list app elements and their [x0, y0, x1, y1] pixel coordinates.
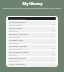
- button[interactable]: Atomic Habits: [8, 27, 56, 32]
- button[interactable]: Educated A Memoir: [8, 33, 56, 38]
- staticText: 4.5: [52, 41, 55, 43]
- button[interactable]: The Silent Patient: [8, 21, 56, 26]
- staticText: 4.5: [52, 53, 55, 55]
- staticText: Educated A Memoir: [9, 33, 28, 36]
- button[interactable]: The Midnight Library: [8, 51, 56, 56]
- staticText: Search your books: [10, 18, 26, 20]
- staticText: The Midnight Library: [9, 51, 29, 54]
- staticText: Dune Chronicles: [9, 63, 25, 66]
- staticText: Crawdads Sing: [9, 39, 24, 42]
- staticText: Sapiens Brief Hist: [9, 57, 26, 60]
- staticText: 4.5: [52, 47, 55, 49]
- staticText: Yuval Harari: [9, 60, 19, 62]
- button[interactable]: Search your books: [8, 17, 56, 20]
- staticText: 4.5: [52, 23, 55, 25]
- staticText: 4.5: [52, 59, 55, 61]
- staticText: Michelle Obama: [9, 48, 22, 50]
- staticText: 4.5: [52, 35, 55, 37]
- button[interactable]: Sapiens Brief Hist: [8, 57, 56, 62]
- staticText: 4.5: [52, 64, 55, 66]
- button[interactable]: Dune Chronicles: [8, 63, 56, 67]
- staticText: 4.5: [52, 29, 55, 31]
- staticText: My library: [22, 1, 43, 6]
- staticText: Tara Westover: [9, 36, 21, 38]
- button[interactable]: Crawdads Sing: [8, 39, 56, 44]
- staticText: Becoming Michelle: [9, 45, 28, 48]
- staticText: read a thousand of books and magazines a…: [2, 7, 62, 10]
- button[interactable]: Becoming Michelle: [8, 45, 56, 50]
- staticText: The Silent Patient: [9, 21, 26, 24]
- staticText: Matt Haig: [9, 54, 17, 56]
- staticText: James Clear: [9, 30, 19, 32]
- staticText: Atomic Habits: [9, 27, 23, 30]
- staticText: Delia Owens: [9, 42, 19, 44]
- staticText: Alex Michaelides: [9, 24, 23, 26]
